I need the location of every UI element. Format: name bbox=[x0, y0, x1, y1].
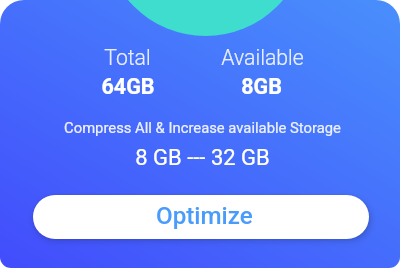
staticText: Total bbox=[104, 45, 151, 70]
staticText: 8GB bbox=[241, 74, 282, 99]
staticText: Compress All & Increase available Storag… bbox=[64, 119, 341, 136]
staticText: 64GB bbox=[101, 74, 155, 99]
staticText: Optimize bbox=[156, 202, 253, 230]
staticText: Available bbox=[221, 45, 304, 70]
button[interactable]: Optimize storage bbox=[33, 195, 369, 239]
staticText: 8 GB --- 32 GB bbox=[135, 145, 270, 171]
